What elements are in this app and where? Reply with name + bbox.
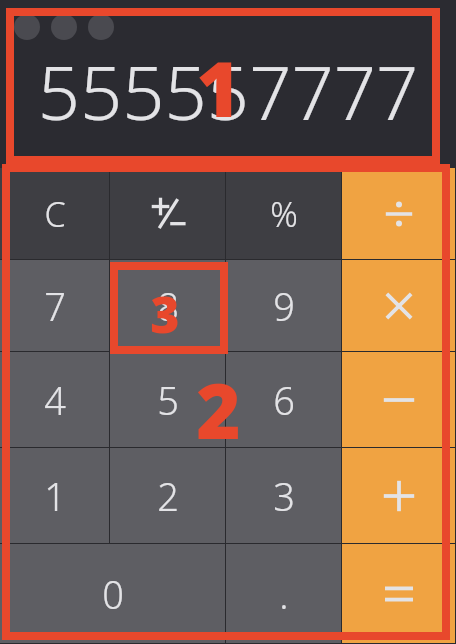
button[interactable]: 4 <box>0 352 109 447</box>
button[interactable]: 2 <box>110 448 225 543</box>
staticText: % <box>270 191 298 237</box>
button[interactable]: 9 <box>226 260 341 351</box>
button[interactable]: Window control <box>51 14 77 40</box>
staticText: 7 <box>44 280 66 332</box>
button[interactable]: Decimal point <box>226 544 341 643</box>
button[interactable]: Minus <box>342 352 455 447</box>
button[interactable]: 7 <box>0 260 109 351</box>
button[interactable]: 5 <box>110 352 225 447</box>
staticText: 555557777 <box>18 41 438 142</box>
staticText: 1 <box>44 470 66 522</box>
staticText: . <box>279 568 289 620</box>
button[interactable]: Plus minus <box>110 168 225 259</box>
staticText: 0 <box>102 568 124 620</box>
button[interactable]: Equals <box>342 544 455 643</box>
button[interactable]: Divide <box>342 168 455 259</box>
button[interactable]: 0 <box>0 544 225 643</box>
button[interactable]: Plus <box>342 448 455 543</box>
button[interactable]: Window control <box>88 14 114 40</box>
staticText: 6 <box>273 374 295 426</box>
button[interactable]: 6 <box>226 352 341 447</box>
staticText: 3 <box>273 470 295 522</box>
button[interactable]: 3 <box>226 448 341 543</box>
staticText: 4 <box>44 374 66 426</box>
staticText: 9 <box>273 280 295 332</box>
button[interactable]: Multiply <box>342 260 455 351</box>
button[interactable]: C <box>0 168 109 259</box>
staticText: 2 <box>196 358 241 462</box>
staticText: 3 <box>150 280 180 348</box>
button[interactable]: Percent <box>226 168 341 259</box>
staticText: 2 <box>157 470 179 522</box>
button[interactable]: 8 <box>110 260 225 351</box>
button[interactable]: 1 <box>0 448 109 543</box>
staticText: 8 <box>157 280 179 332</box>
button[interactable]: Window control <box>14 14 40 40</box>
staticText: C <box>44 191 66 237</box>
staticText: 5 <box>157 374 179 426</box>
staticText: 1 <box>196 36 241 140</box>
